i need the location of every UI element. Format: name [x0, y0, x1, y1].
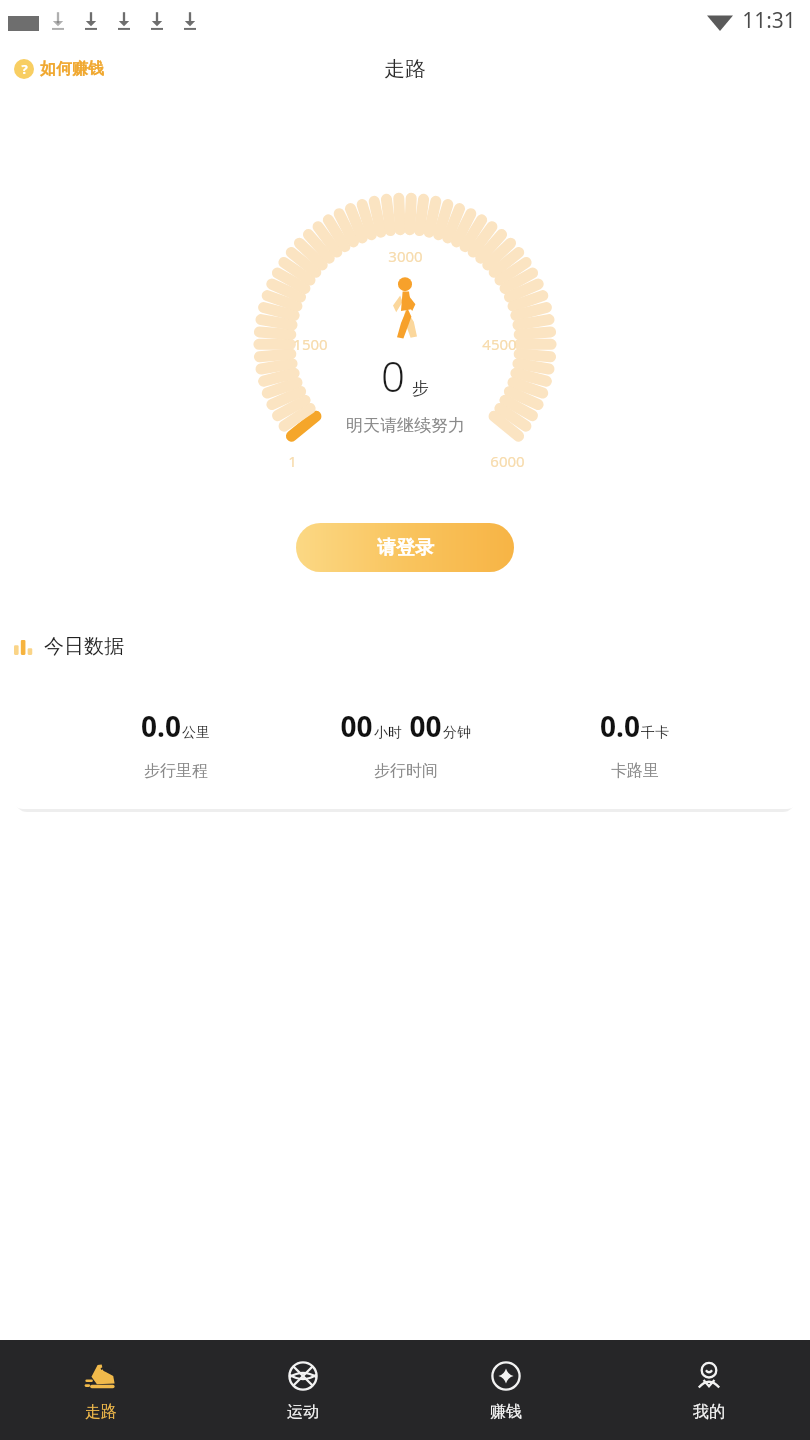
button[interactable]: 0.0 [12, 678, 798, 809]
staticText: 00 [409, 707, 442, 745]
staticText: 4500 [482, 334, 517, 354]
other: 我的 [692, 1359, 726, 1393]
button[interactable]: 请登录 [296, 523, 514, 572]
staticText: 0.0 [141, 707, 181, 745]
other: 运动 [286, 1359, 320, 1393]
button[interactable]: 赚钱 [404, 1340, 607, 1440]
staticText: 步行里程 [144, 761, 208, 781]
staticText: 请登录 [377, 536, 434, 560]
staticText: 赚钱 [490, 1402, 522, 1422]
staticText: 0.0 [600, 707, 640, 745]
staticText: 卡路里 [611, 761, 659, 781]
staticText: ? [21, 60, 28, 78]
staticText: 千卡 [641, 724, 669, 742]
button[interactable]: 我的 [607, 1340, 810, 1440]
staticText: 3000 [388, 246, 423, 266]
staticText: 1 [288, 451, 297, 471]
staticText: 6000 [490, 451, 525, 471]
button[interactable]: ? [0, 53, 114, 85]
staticText: 公里 [182, 724, 210, 742]
staticText: 小时 [374, 724, 402, 742]
staticText: 0 [381, 347, 405, 404]
staticText: 00 [340, 707, 373, 745]
other: 赚钱 [489, 1359, 523, 1393]
staticText: 步 [412, 378, 429, 399]
other: 走路 [84, 1359, 118, 1393]
staticText: 明天请继续努力 [346, 415, 465, 436]
staticText: 1500 [293, 334, 328, 354]
staticText: 如何赚钱 [40, 59, 104, 79]
button[interactable]: 运动 [202, 1340, 404, 1440]
staticText: 我的 [693, 1402, 725, 1422]
staticText: 11:31 [742, 6, 796, 35]
staticText: 步行时间 [374, 761, 438, 781]
staticText: 走路 [85, 1402, 117, 1422]
staticText: 运动 [287, 1402, 319, 1422]
staticText: 分钟 [443, 724, 471, 742]
staticText: 走路 [384, 56, 426, 82]
staticText: 今日数据 [44, 634, 124, 659]
button[interactable]: 走路 [0, 1340, 202, 1440]
